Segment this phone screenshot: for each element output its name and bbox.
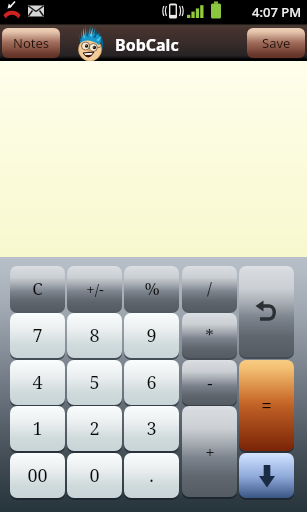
staticText: 0	[89, 463, 100, 488]
button[interactable]: 8	[67, 313, 122, 358]
button[interactable]: Notes	[2, 28, 60, 58]
button[interactable]: +	[182, 406, 237, 497]
staticText: 9	[146, 323, 157, 348]
staticText: 5	[89, 370, 100, 395]
staticText: -	[207, 371, 213, 394]
button[interactable]: +/-	[67, 266, 122, 311]
staticText: *	[205, 324, 214, 347]
staticText: 6	[146, 370, 157, 395]
staticText: BobCalc	[115, 34, 179, 56]
staticText: .	[149, 463, 154, 488]
staticText: 8	[89, 323, 100, 348]
staticText: Save	[262, 34, 291, 52]
button[interactable]: =	[239, 360, 294, 451]
button[interactable]: Enter	[239, 453, 294, 498]
staticText: Notes	[13, 34, 49, 52]
button[interactable]: *	[182, 313, 237, 358]
button[interactable]: 7	[10, 313, 65, 358]
button[interactable]: 3	[124, 406, 179, 451]
staticText: 3	[146, 416, 157, 441]
staticText: +/-	[86, 279, 104, 299]
staticText: +	[205, 440, 215, 463]
button[interactable]: .	[124, 453, 179, 498]
button[interactable]: %	[124, 266, 179, 311]
button[interactable]: 00	[10, 453, 65, 498]
button[interactable]: -	[182, 360, 237, 405]
staticText: 4	[32, 370, 43, 395]
staticText: 7	[32, 323, 43, 348]
button[interactable]: Undo	[239, 266, 294, 357]
button[interactable]: C	[10, 266, 65, 311]
button[interactable]: 1	[10, 406, 65, 451]
staticText: 4:07 PM	[252, 3, 302, 21]
staticText: 2	[89, 416, 100, 441]
staticText: =	[261, 393, 272, 419]
button[interactable]: 0	[67, 453, 122, 498]
button[interactable]: 2	[67, 406, 122, 451]
button[interactable]: /	[182, 266, 237, 311]
staticText: 1	[32, 416, 43, 441]
staticText: C	[32, 277, 43, 300]
button[interactable]: 9	[124, 313, 179, 358]
staticText: /	[207, 277, 212, 300]
button[interactable]: 4	[10, 360, 65, 405]
staticText: %	[144, 277, 160, 300]
staticText: 00	[27, 463, 48, 488]
button[interactable]: Save	[247, 28, 305, 58]
button[interactable]: 5	[67, 360, 122, 405]
button[interactable]: 6	[124, 360, 179, 405]
